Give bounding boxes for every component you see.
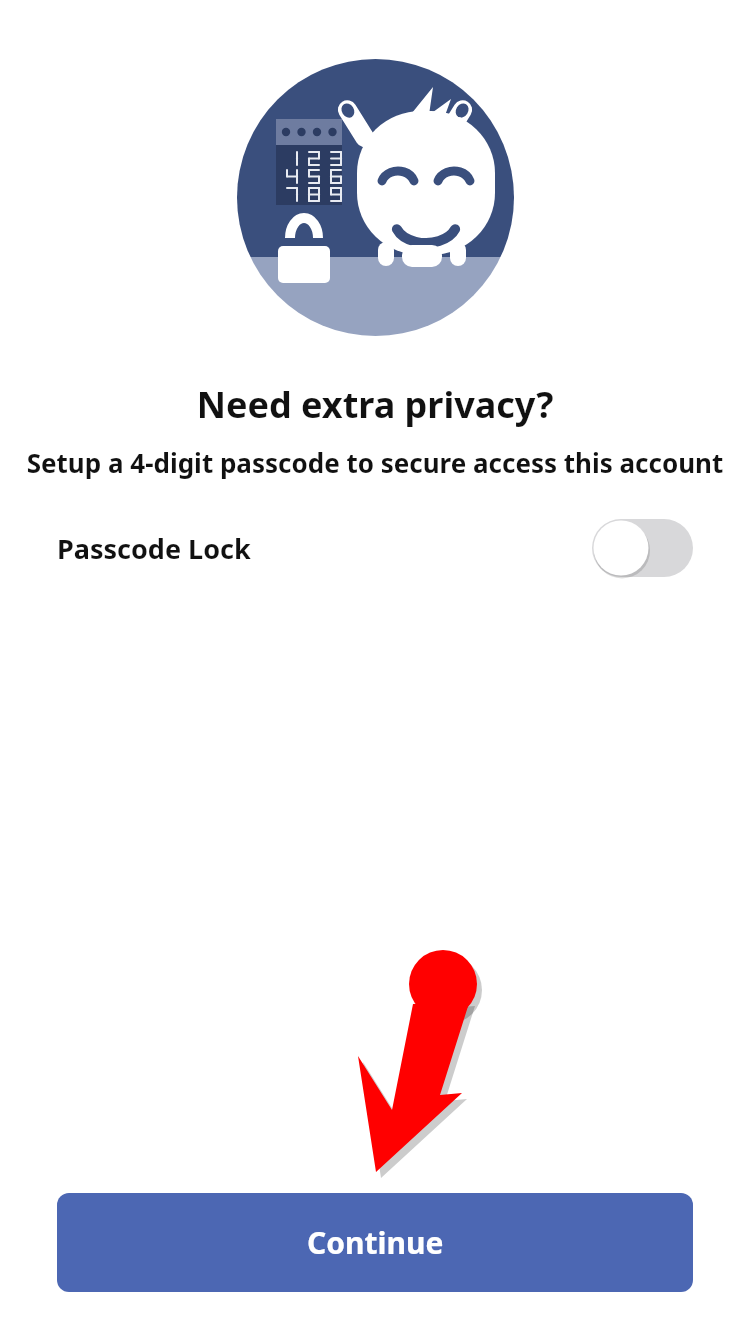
staticText: Need extra privacy? [0, 380, 750, 429]
staticText: Passcode Lock [57, 530, 251, 567]
button[interactable]: Continue [57, 1193, 693, 1292]
button[interactable]: Passcode Lock toggle [592, 519, 693, 577]
staticText: Continue [307, 1222, 444, 1263]
button[interactable]: Passcode Lock [0, 510, 750, 586]
staticText: Setup a 4-digit passcode to secure acces… [26, 445, 724, 480]
